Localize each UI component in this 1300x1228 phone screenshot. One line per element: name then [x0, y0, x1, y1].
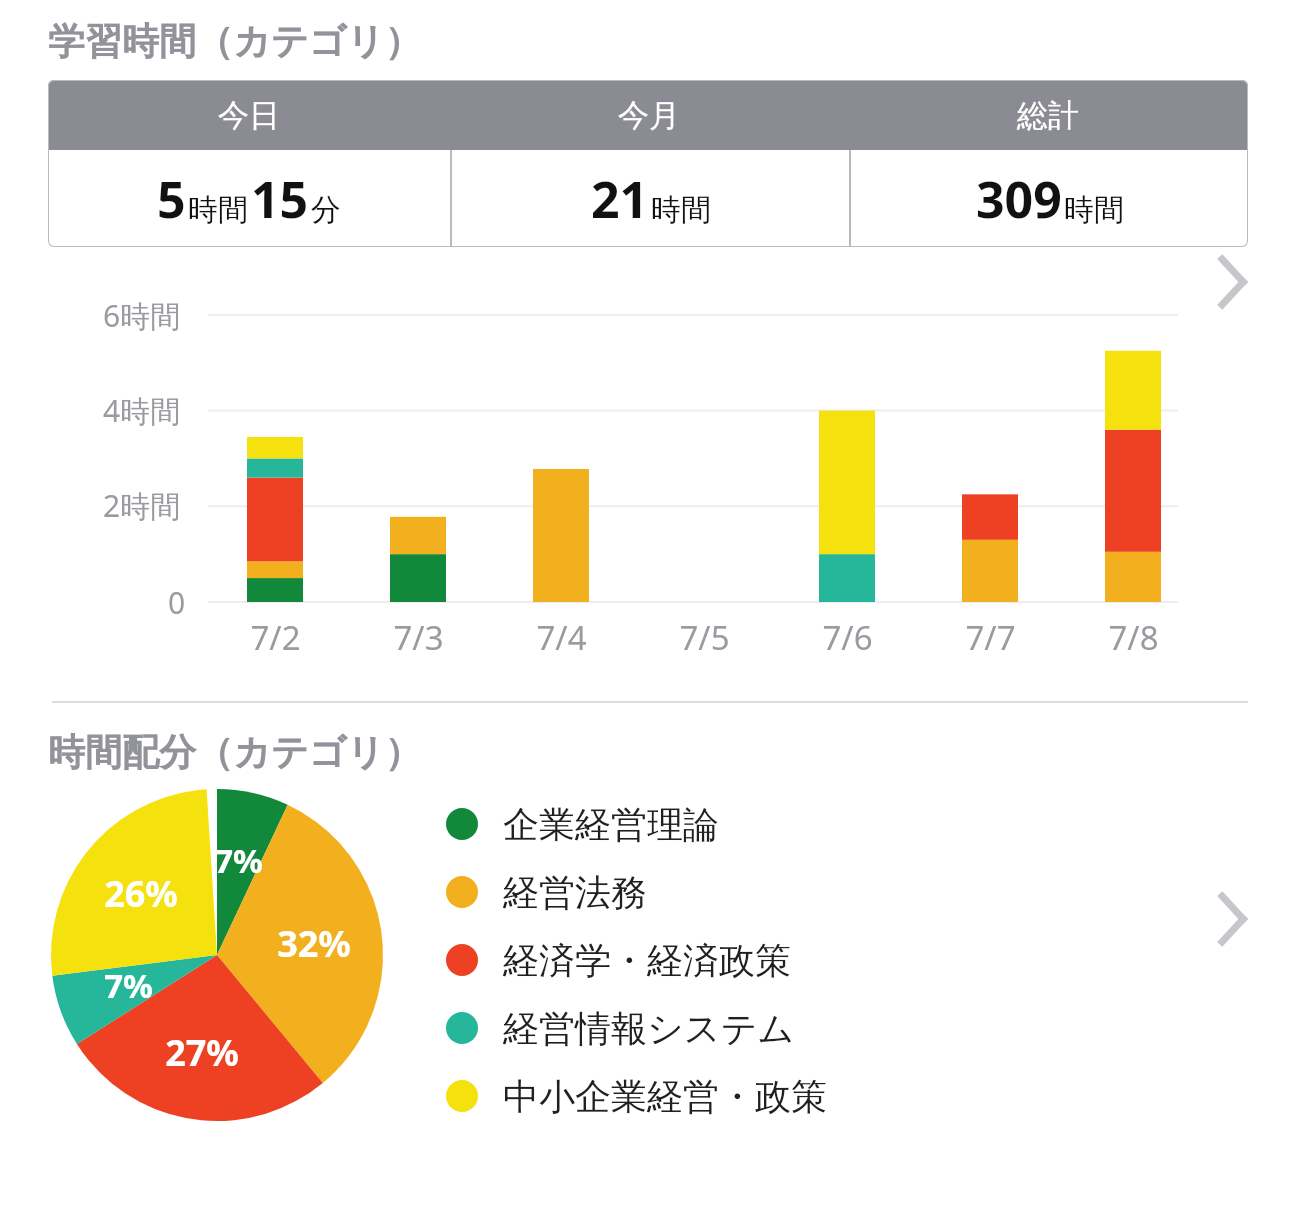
button[interactable]: 総計 — [848, 80, 1248, 150]
button[interactable]: 7% — [0, 776, 1300, 1146]
staticText: 5 — [157, 165, 186, 233]
button[interactable]: 経済学・経済政策 — [446, 926, 791, 994]
staticText: 21 — [591, 165, 649, 233]
staticText: 経済学・経済政策 — [503, 938, 791, 983]
button[interactable]: 企業経営理論 — [446, 790, 719, 858]
button[interactable]: 今日 — [48, 80, 450, 150]
staticText: 32% — [277, 919, 351, 968]
staticText: 7% — [104, 963, 153, 1008]
staticText: 今月 — [618, 96, 680, 135]
button[interactable]: 今月 — [450, 80, 848, 150]
staticText: 企業経営理論 — [503, 802, 719, 847]
button[interactable]: 時間配分の詳細を開く — [1202, 888, 1264, 950]
button[interactable]: 中小企業経営・政策 — [446, 1062, 827, 1130]
button[interactable]: 5 — [48, 150, 450, 247]
button[interactable]: 6時間 — [0, 247, 1300, 677]
staticText: 時間 — [1064, 191, 1124, 229]
staticText: 7/7 — [965, 615, 1016, 660]
staticText: 7/4 — [536, 615, 587, 660]
staticText: 総計 — [1017, 96, 1079, 135]
staticText: 26% — [104, 869, 178, 918]
staticText: 27% — [165, 1028, 239, 1077]
staticText: 0 — [168, 582, 186, 623]
staticText: 今日 — [218, 96, 280, 135]
staticText: 経営情報システム — [503, 1006, 795, 1051]
staticText: 経営法務 — [503, 870, 647, 915]
staticText: 2時間 — [103, 485, 181, 526]
staticText: 6時間 — [103, 295, 181, 336]
staticText: 時間 — [651, 191, 711, 229]
staticText: 7% — [214, 838, 263, 883]
staticText: 7/2 — [250, 615, 301, 660]
staticText: 7/8 — [1108, 615, 1159, 660]
button[interactable]: 経営情報システム — [446, 994, 795, 1062]
staticText: 4時間 — [103, 390, 181, 431]
button[interactable]: 学習時間の詳細を開く — [1202, 251, 1264, 313]
staticText: 学習時間（カテゴリ） — [48, 18, 422, 65]
staticText: 中小企業経営・政策 — [503, 1074, 827, 1119]
staticText: 7/6 — [822, 615, 873, 660]
staticText: 7/5 — [679, 615, 730, 660]
staticText: 分 — [311, 191, 341, 229]
staticText: 時間 — [188, 191, 248, 229]
staticText: 309 — [976, 165, 1062, 233]
button[interactable]: 309 — [851, 150, 1248, 247]
button[interactable]: 21 — [452, 150, 849, 247]
staticText: 時間配分（カテゴリ） — [48, 729, 422, 776]
button[interactable]: 経営法務 — [446, 858, 647, 926]
staticText: 7/3 — [393, 615, 444, 660]
staticText: 15 — [251, 165, 309, 233]
